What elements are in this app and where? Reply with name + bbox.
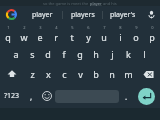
button[interactable]: players	[63, 6, 102, 23]
staticText: r	[54, 31, 58, 43]
button[interactable]: n	[104, 64, 120, 84]
staticText: h	[93, 48, 99, 60]
staticText: player	[32, 10, 53, 20]
button[interactable]: x	[40, 64, 56, 84]
staticText: c	[62, 68, 67, 80]
staticText: p	[149, 31, 155, 43]
staticText: ,	[30, 91, 33, 102]
button[interactable]: ?123	[0, 84, 24, 108]
staticText: i	[119, 31, 122, 43]
button[interactable]: Enter	[138, 88, 155, 105]
button[interactable]: 4	[48, 23, 64, 44]
button[interactable]: Voice input	[142, 6, 160, 23]
staticText: 8	[119, 25, 122, 30]
button[interactable]: v	[72, 64, 88, 84]
button[interactable]: k	[120, 44, 136, 64]
button[interactable]: j	[104, 44, 120, 64]
staticText: u	[101, 31, 107, 43]
staticText: s	[30, 48, 35, 60]
staticText: 1	[7, 25, 10, 30]
staticText: ?123	[4, 91, 20, 101]
staticText: 4	[55, 25, 58, 30]
button[interactable]: 5	[64, 23, 80, 44]
staticText: q	[5, 31, 11, 43]
button[interactable]: player's	[103, 6, 142, 23]
staticText: player	[90, 1, 102, 6]
button[interactable]: h	[88, 44, 104, 64]
staticText: and his	[102, 1, 117, 6]
button[interactable]: m	[120, 64, 136, 84]
staticText: 9	[135, 25, 138, 30]
staticText: o	[133, 31, 139, 43]
button[interactable]: Shift	[0, 64, 24, 84]
staticText: v	[78, 68, 83, 80]
staticText: k	[126, 48, 131, 60]
button[interactable]: 3	[32, 23, 48, 44]
staticText: 7	[103, 25, 106, 30]
button[interactable]: c	[56, 64, 72, 84]
staticText: g	[77, 48, 83, 60]
staticText: x	[46, 68, 51, 80]
staticText: y	[86, 31, 91, 43]
staticText: e	[37, 31, 43, 43]
staticText: player's	[110, 10, 136, 20]
button[interactable]: b	[88, 64, 104, 84]
staticText: m	[124, 68, 133, 80]
staticText: 5	[71, 25, 74, 30]
staticText: d	[45, 48, 51, 60]
staticText: players	[71, 10, 95, 20]
button[interactable]: 0	[144, 23, 160, 44]
button[interactable]: 2	[16, 23, 32, 44]
button[interactable]: player	[22, 6, 62, 23]
staticText: n	[109, 68, 115, 80]
staticText: f	[62, 48, 66, 60]
button[interactable]: Emoji	[38, 84, 55, 108]
staticText: t	[70, 31, 74, 43]
button[interactable]: z	[24, 64, 40, 84]
button[interactable]: 6	[80, 23, 96, 44]
button[interactable]: Google	[0, 6, 22, 23]
staticText: 3	[39, 25, 42, 30]
staticText: 6	[87, 25, 90, 30]
button[interactable]: 7	[96, 23, 112, 44]
staticText: w	[20, 31, 28, 43]
button[interactable]: ,	[24, 84, 38, 108]
button[interactable]: d	[40, 44, 56, 64]
button[interactable]: l	[136, 44, 152, 64]
button[interactable]: f	[56, 44, 72, 64]
staticText: .	[125, 91, 128, 102]
staticText: l	[143, 48, 146, 60]
staticText: j	[111, 48, 114, 60]
button[interactable]: a	[8, 44, 24, 64]
staticText: 0	[151, 25, 154, 30]
staticText: a	[13, 48, 19, 60]
button[interactable]: Backspace	[136, 64, 160, 84]
staticText: b	[93, 68, 99, 80]
button[interactable]: g	[72, 44, 88, 64]
staticText: 2	[23, 25, 26, 30]
button[interactable]: s	[24, 44, 40, 64]
button[interactable]: 1	[0, 23, 16, 44]
staticText: z	[30, 68, 35, 80]
staticText: so the game is meet the	[43, 1, 90, 6]
button[interactable]: 8	[112, 23, 128, 44]
button[interactable]: 9	[128, 23, 144, 44]
button[interactable]: .	[119, 84, 133, 108]
